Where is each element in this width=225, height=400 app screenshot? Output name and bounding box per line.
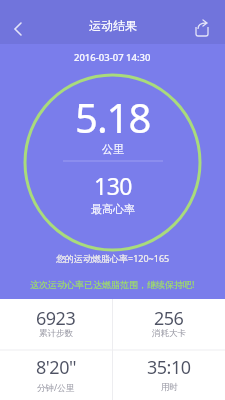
staticText: 用时 — [161, 382, 178, 393]
staticText: 您的运动燃脂心率=120~165 — [56, 252, 170, 264]
button[interactable]: 256 — [113, 299, 225, 335]
staticText: 最高心率 — [91, 202, 135, 216]
staticText: 2016-03-07 14:30 — [74, 51, 151, 64]
staticText: 运动结果 — [89, 18, 137, 33]
staticText: 分钟/公里 — [37, 382, 75, 394]
button[interactable]: 8'20'' — [0, 299, 112, 335]
staticText: 消耗大卡 — [152, 328, 186, 339]
button[interactable] — [0, 0, 44, 44]
button[interactable] — [181, 0, 225, 44]
staticText: 这次运动心率已达燃脂范围，继续保持吧! — [30, 278, 195, 290]
staticText: 35:10 — [147, 355, 191, 380]
staticText: 5.18 — [75, 90, 151, 144]
staticText: 256 — [154, 306, 184, 331]
button[interactable]: 35:10 — [113, 299, 225, 335]
staticText: 6923 — [36, 306, 76, 331]
staticText: 8'20'' — [36, 355, 77, 380]
staticText: 130 — [94, 170, 132, 201]
staticText: 公里 — [102, 142, 124, 156]
staticText: 累计步数 — [39, 328, 73, 339]
button[interactable]: 6923 — [0, 299, 112, 335]
